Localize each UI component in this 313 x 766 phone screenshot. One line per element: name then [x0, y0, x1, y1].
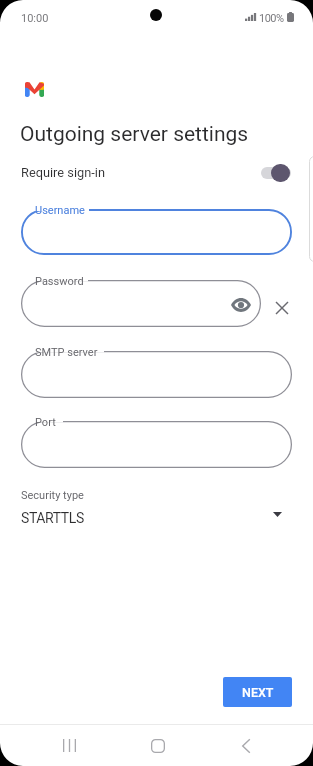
- button[interactable]: Port: [21, 421, 292, 468]
- staticText: Username: [35, 204, 85, 217]
- staticText: Port: [35, 416, 56, 429]
- button[interactable]: Require sign-in: [0, 156, 313, 190]
- staticText: SMTP server: [35, 346, 98, 359]
- button[interactable]: SMTP server: [21, 351, 292, 398]
- staticText: Require sign-in: [21, 165, 105, 180]
- staticText: 100%: [259, 12, 284, 25]
- button[interactable]: Home: [133, 725, 182, 766]
- staticText: NEXT: [242, 685, 274, 700]
- staticText: Security type: [21, 489, 84, 502]
- staticText: STARTTLS: [21, 510, 84, 526]
- button[interactable]: Back: [221, 725, 270, 766]
- button[interactable]: Security type: [0, 484, 313, 532]
- staticText: Outgoing server settings: [20, 122, 249, 147]
- button[interactable]: Show password: [231, 295, 251, 315]
- staticText: 10:00: [21, 12, 49, 25]
- button[interactable]: Clear password: [270, 296, 293, 319]
- button[interactable]: Password: [21, 280, 261, 327]
- button[interactable]: Username: [21, 209, 292, 255]
- button[interactable]: NEXT: [223, 677, 292, 707]
- button[interactable]: Recent apps: [45, 725, 94, 766]
- staticText: Password: [35, 275, 84, 288]
